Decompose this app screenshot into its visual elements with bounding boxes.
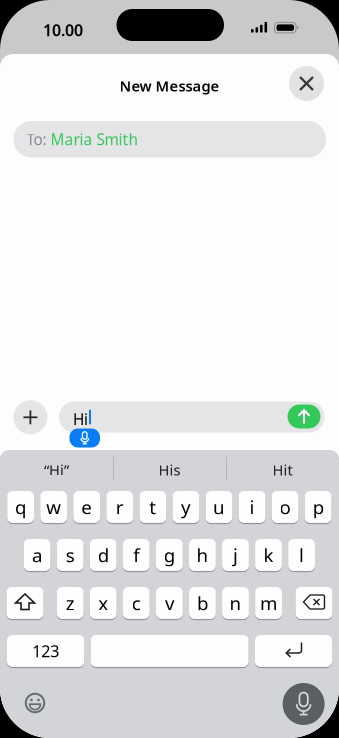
button[interactable]: v — [156, 586, 183, 620]
staticText: v — [165, 591, 174, 615]
button[interactable]: c — [123, 586, 150, 620]
button[interactable]: n — [222, 586, 249, 620]
staticText: 10.00 — [43, 19, 83, 41]
button[interactable] — [287, 404, 320, 428]
staticText: h — [196, 543, 208, 567]
button[interactable] — [20, 688, 50, 718]
staticText: f — [133, 543, 139, 567]
button[interactable]: b — [189, 586, 216, 620]
button[interactable]: a — [24, 538, 50, 572]
staticText: m — [260, 591, 277, 615]
button[interactable]: y — [172, 490, 199, 524]
staticText: g — [164, 543, 175, 567]
staticText: z — [66, 591, 75, 615]
staticText: Maria Smith — [50, 129, 137, 149]
staticText: y — [181, 495, 191, 519]
button[interactable]: 123 — [7, 634, 84, 668]
button[interactable]: u — [206, 490, 232, 524]
staticText: r — [116, 495, 124, 519]
staticText: k — [263, 543, 273, 567]
button[interactable] — [283, 683, 325, 725]
button[interactable]: “Hi” — [0, 460, 113, 479]
button[interactable]: k — [255, 538, 282, 572]
button[interactable]: Hi — [59, 401, 324, 432]
button[interactable]: Hit — [226, 460, 339, 479]
button[interactable]: s — [57, 538, 84, 572]
staticText: u — [213, 495, 225, 519]
staticText: To: — [26, 129, 46, 149]
staticText: d — [98, 543, 109, 567]
staticText: o — [280, 495, 291, 519]
button[interactable]: e — [73, 490, 100, 524]
staticText: s — [66, 543, 75, 567]
button[interactable]: z — [57, 586, 84, 620]
button[interactable]: x — [90, 586, 117, 620]
button[interactable]: f — [123, 538, 150, 572]
button[interactable]: r — [106, 490, 133, 524]
staticText: l — [299, 543, 304, 567]
button[interactable]: l — [288, 538, 315, 572]
button[interactable] — [255, 634, 332, 668]
staticText: b — [197, 591, 208, 615]
staticText: w — [46, 495, 61, 519]
button[interactable]: m — [255, 586, 282, 620]
staticText: Hi — [73, 409, 88, 429]
staticText: i — [249, 495, 254, 519]
staticText: Hit — [272, 460, 292, 479]
button[interactable]: q — [7, 490, 34, 524]
button[interactable] — [295, 586, 332, 620]
button[interactable]: His — [113, 460, 226, 479]
staticText: c — [132, 591, 141, 615]
staticText: 123 — [32, 640, 59, 662]
staticText: x — [98, 591, 108, 615]
button[interactable]: d — [90, 538, 117, 572]
staticText: His — [158, 460, 180, 479]
button[interactable]: g — [156, 538, 183, 572]
button[interactable] — [6, 586, 43, 620]
button[interactable]: j — [222, 538, 249, 572]
button[interactable] — [289, 66, 324, 101]
button[interactable]: w — [40, 490, 67, 524]
button[interactable]: p — [305, 490, 331, 524]
button[interactable]: To: — [13, 121, 326, 157]
button[interactable] — [69, 428, 100, 447]
staticText: p — [313, 495, 324, 519]
button[interactable]: h — [189, 538, 216, 572]
staticText: e — [81, 495, 92, 519]
button[interactable] — [13, 400, 47, 434]
button[interactable] — [91, 634, 249, 668]
button[interactable]: o — [272, 490, 298, 524]
staticText: j — [233, 543, 238, 567]
staticText: a — [32, 543, 42, 567]
staticText: New Message — [119, 76, 219, 95]
staticText: t — [149, 495, 156, 519]
button[interactable]: i — [239, 490, 265, 524]
staticText: “Hi” — [44, 460, 69, 479]
staticText: q — [15, 495, 26, 519]
button[interactable]: t — [139, 490, 166, 524]
staticText: n — [229, 591, 241, 615]
